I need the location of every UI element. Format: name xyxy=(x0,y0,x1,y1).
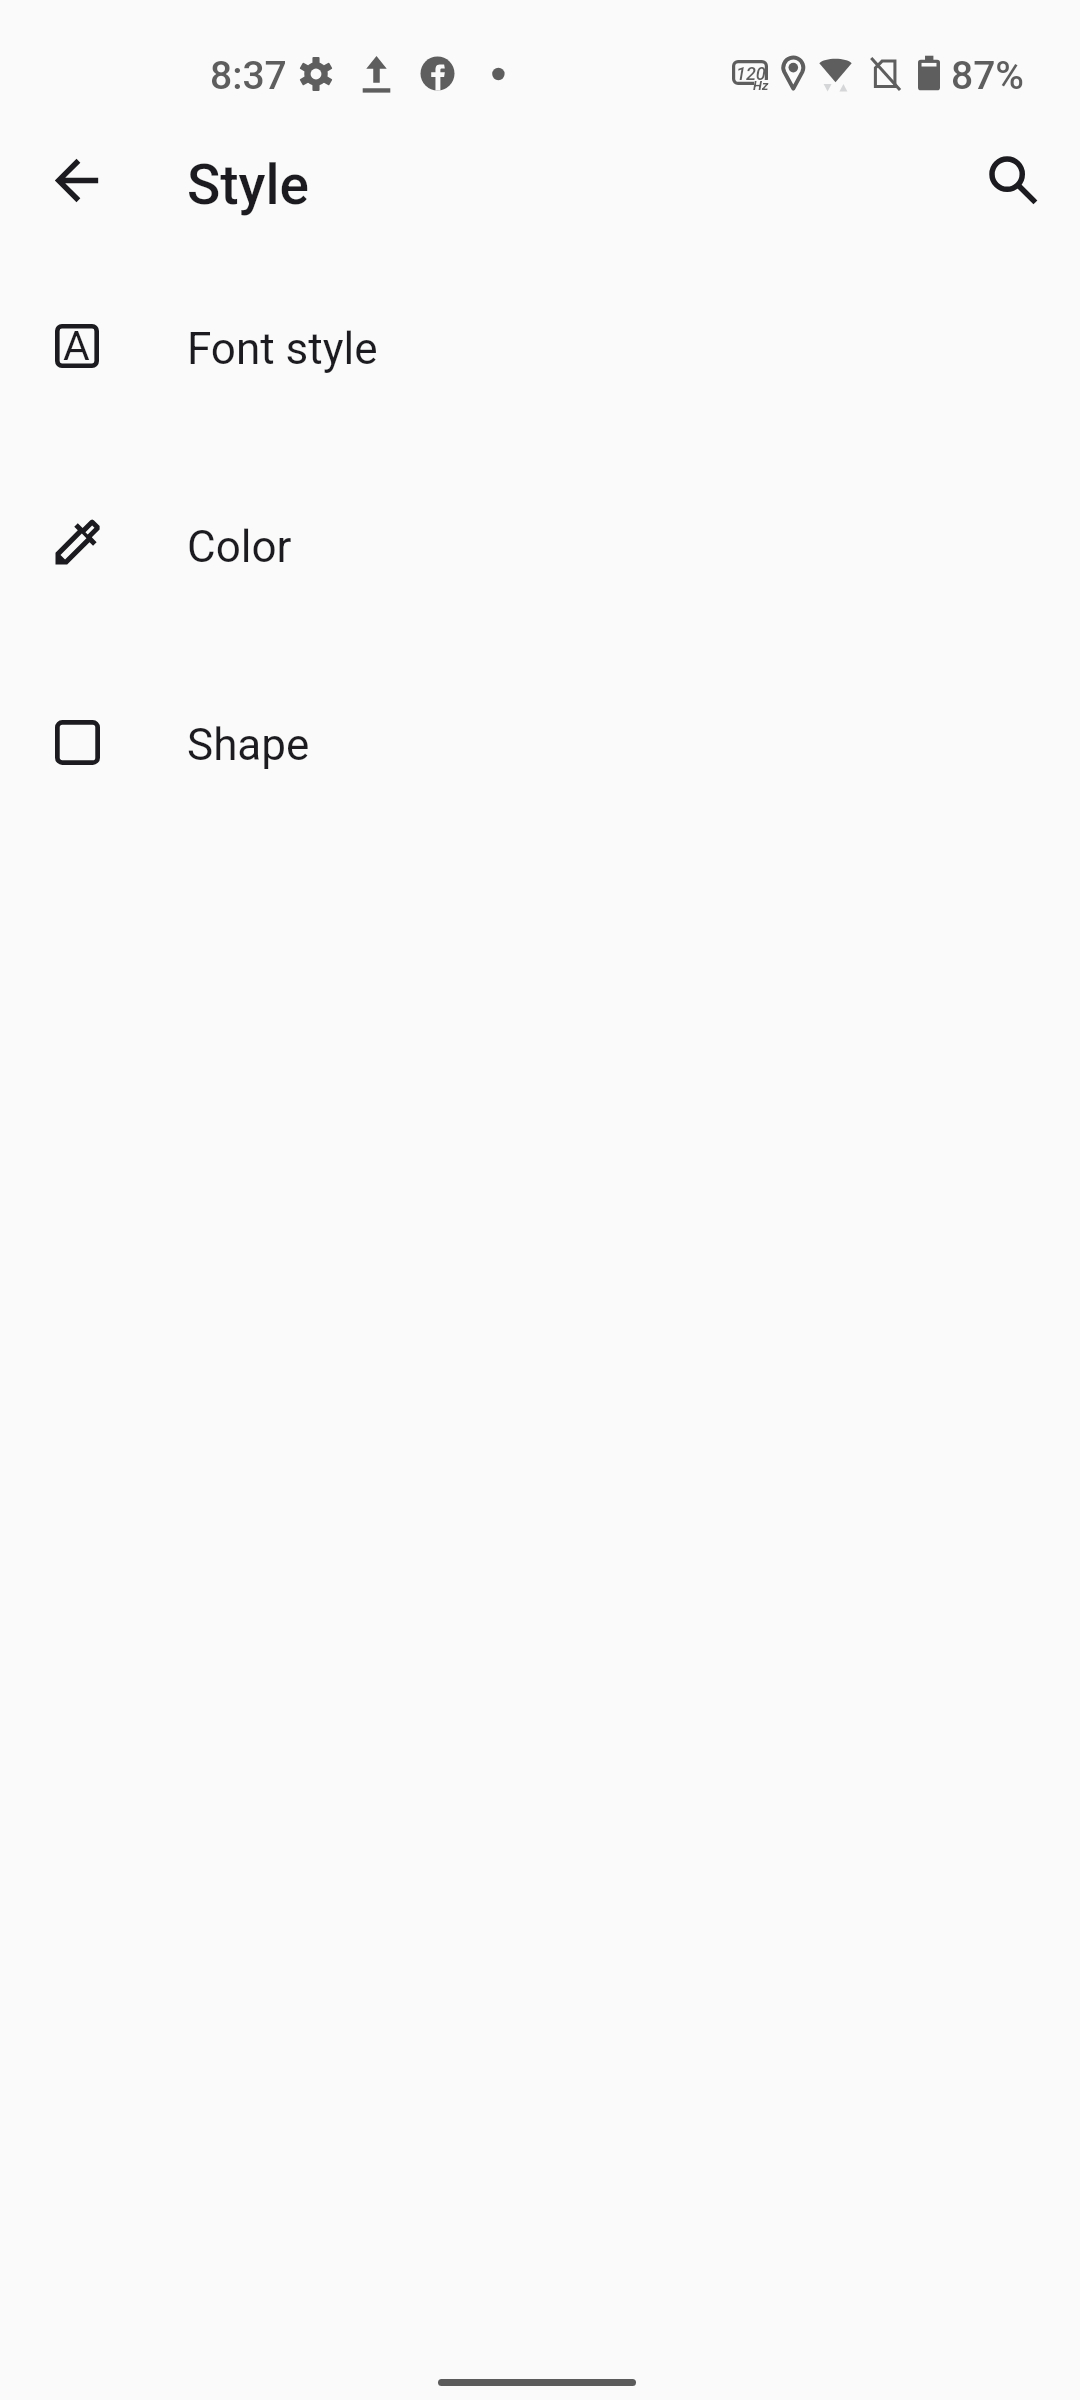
staticText: Hz xyxy=(753,78,769,93)
staticText: Font style xyxy=(187,323,378,375)
staticText: 8:37 xyxy=(210,53,287,99)
button[interactable]: Search xyxy=(959,137,1047,225)
staticText: A xyxy=(63,322,90,366)
staticText: 120 xyxy=(736,63,766,84)
staticText: Style xyxy=(187,153,310,217)
button[interactable]: Color xyxy=(0,446,1080,644)
button[interactable]: Shape xyxy=(0,644,1080,842)
button[interactable]: A xyxy=(0,248,1080,446)
staticText: 87% xyxy=(951,53,1025,99)
staticText: Shape xyxy=(187,719,310,771)
button[interactable]: Back xyxy=(33,137,121,225)
staticText: Color xyxy=(187,521,292,573)
